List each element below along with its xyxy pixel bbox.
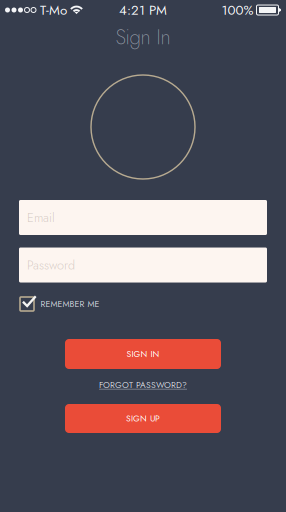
staticText: Password (27, 256, 75, 274)
staticText: SIGN IN (126, 348, 159, 360)
staticText: Sign In (115, 22, 170, 52)
staticText: FORGOT PASSWORD? (99, 379, 187, 391)
staticText: 100% (221, 0, 253, 20)
staticText: Email (27, 208, 55, 227)
staticText: REMEMBER ME (40, 298, 99, 310)
staticText: SIGN UP (126, 412, 160, 425)
staticText: 4:21 PM (119, 0, 167, 20)
button[interactable]: SIGN IN (65, 339, 221, 369)
button[interactable]: SIGN UP (65, 404, 221, 433)
button[interactable]: FORGOT PASSWORD? (53, 377, 233, 393)
button[interactable]: REMEMBER ME (19, 294, 267, 314)
staticText: T-Mo (40, 0, 67, 20)
